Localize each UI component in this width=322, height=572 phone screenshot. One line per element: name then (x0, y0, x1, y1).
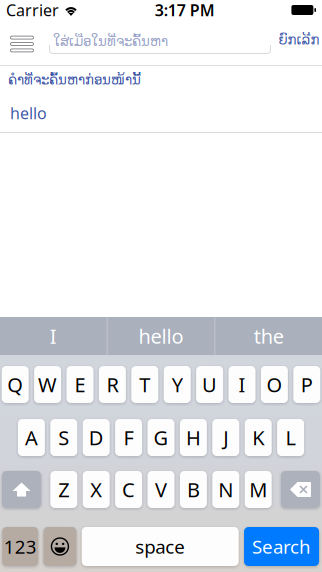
staticText: C (122, 476, 135, 503)
staticText: hello (10, 102, 47, 124)
button[interactable]: Emoji (43, 527, 76, 566)
button[interactable]: E (66, 366, 93, 403)
button[interactable]: Delete (281, 471, 320, 508)
staticText: Q (7, 371, 23, 398)
button[interactable]: J (212, 419, 239, 456)
button[interactable]: ຍົກເລີກ (277, 26, 321, 54)
button[interactable]: Y (164, 366, 191, 403)
button[interactable]: A (18, 419, 45, 456)
button[interactable]: F (115, 419, 142, 456)
button[interactable]: H (180, 419, 207, 456)
staticText: J (223, 424, 228, 451)
staticText: E (74, 371, 85, 398)
button[interactable]: V (147, 471, 174, 508)
button[interactable]: S (50, 419, 77, 456)
staticText: L (286, 424, 296, 451)
staticText: ໃສ່ເມືອໃນທີ່ຈະຄົ້ນຫາ (53, 34, 168, 49)
button[interactable]: Search (244, 527, 319, 566)
button[interactable]: O (261, 366, 288, 403)
staticText: V (155, 476, 167, 503)
button[interactable]: Numbers (2, 527, 38, 566)
button[interactable]: X (83, 471, 110, 508)
staticText: the (254, 323, 284, 349)
staticText: Carrier (6, 0, 59, 21)
button[interactable]: Shift (2, 471, 41, 508)
staticText: A (25, 424, 38, 451)
staticText: B (187, 476, 200, 503)
button[interactable]: W (34, 366, 61, 403)
button[interactable]: Z (50, 471, 77, 508)
staticText: M (249, 476, 267, 503)
staticText: D (89, 424, 104, 451)
staticText: U (202, 371, 217, 398)
staticText: N (218, 476, 233, 503)
button[interactable]: hello (108, 317, 214, 355)
staticText: O (266, 371, 282, 398)
button[interactable]: B (180, 471, 207, 508)
staticText: H (186, 424, 201, 451)
staticText: Y (172, 371, 183, 398)
staticText: S (58, 424, 69, 451)
staticText: T (139, 371, 150, 398)
button[interactable]: U (196, 366, 223, 403)
staticText: F (124, 424, 134, 451)
staticText: I (238, 371, 245, 398)
button[interactable]: P (293, 366, 320, 403)
button[interactable]: L (277, 419, 304, 456)
staticText: X (90, 476, 102, 503)
staticText: 3:17 PM (155, 0, 215, 21)
button[interactable]: I (0, 317, 107, 355)
button[interactable]: N (212, 471, 239, 508)
staticText: hello (138, 323, 183, 349)
staticText: ຄຳທີ່ຈະຄົ້ນຫາກ່ອນໜ້ານີ້ (8, 72, 141, 87)
staticText: G (153, 424, 168, 451)
staticText: Search (252, 534, 311, 559)
staticText: I (50, 323, 57, 349)
button[interactable]: Q (2, 366, 29, 403)
button[interactable]: M (245, 471, 272, 508)
button[interactable]: D (83, 419, 110, 456)
staticText: Z (58, 476, 69, 503)
button[interactable]: K (245, 419, 272, 456)
button[interactable]: T (131, 366, 158, 403)
button[interactable]: ໃສ່ເມືອໃນທີ່ຈະຄົ້ນຫາ (49, 24, 272, 54)
button[interactable]: Menu (2, 28, 42, 60)
button[interactable]: G (147, 419, 174, 456)
button[interactable]: the (215, 317, 322, 355)
button[interactable]: hello (0, 94, 322, 132)
staticText: ຍົກເລີກ (278, 32, 319, 47)
staticText: W (38, 371, 57, 398)
button[interactable]: I (228, 366, 255, 403)
staticText: R (106, 371, 118, 398)
staticText: P (301, 371, 313, 398)
button[interactable]: space (82, 527, 239, 566)
staticText: space (135, 534, 185, 559)
staticText: K (252, 424, 264, 451)
button[interactable]: C (115, 471, 142, 508)
button[interactable]: R (99, 366, 126, 403)
staticText: 123 (4, 534, 37, 559)
